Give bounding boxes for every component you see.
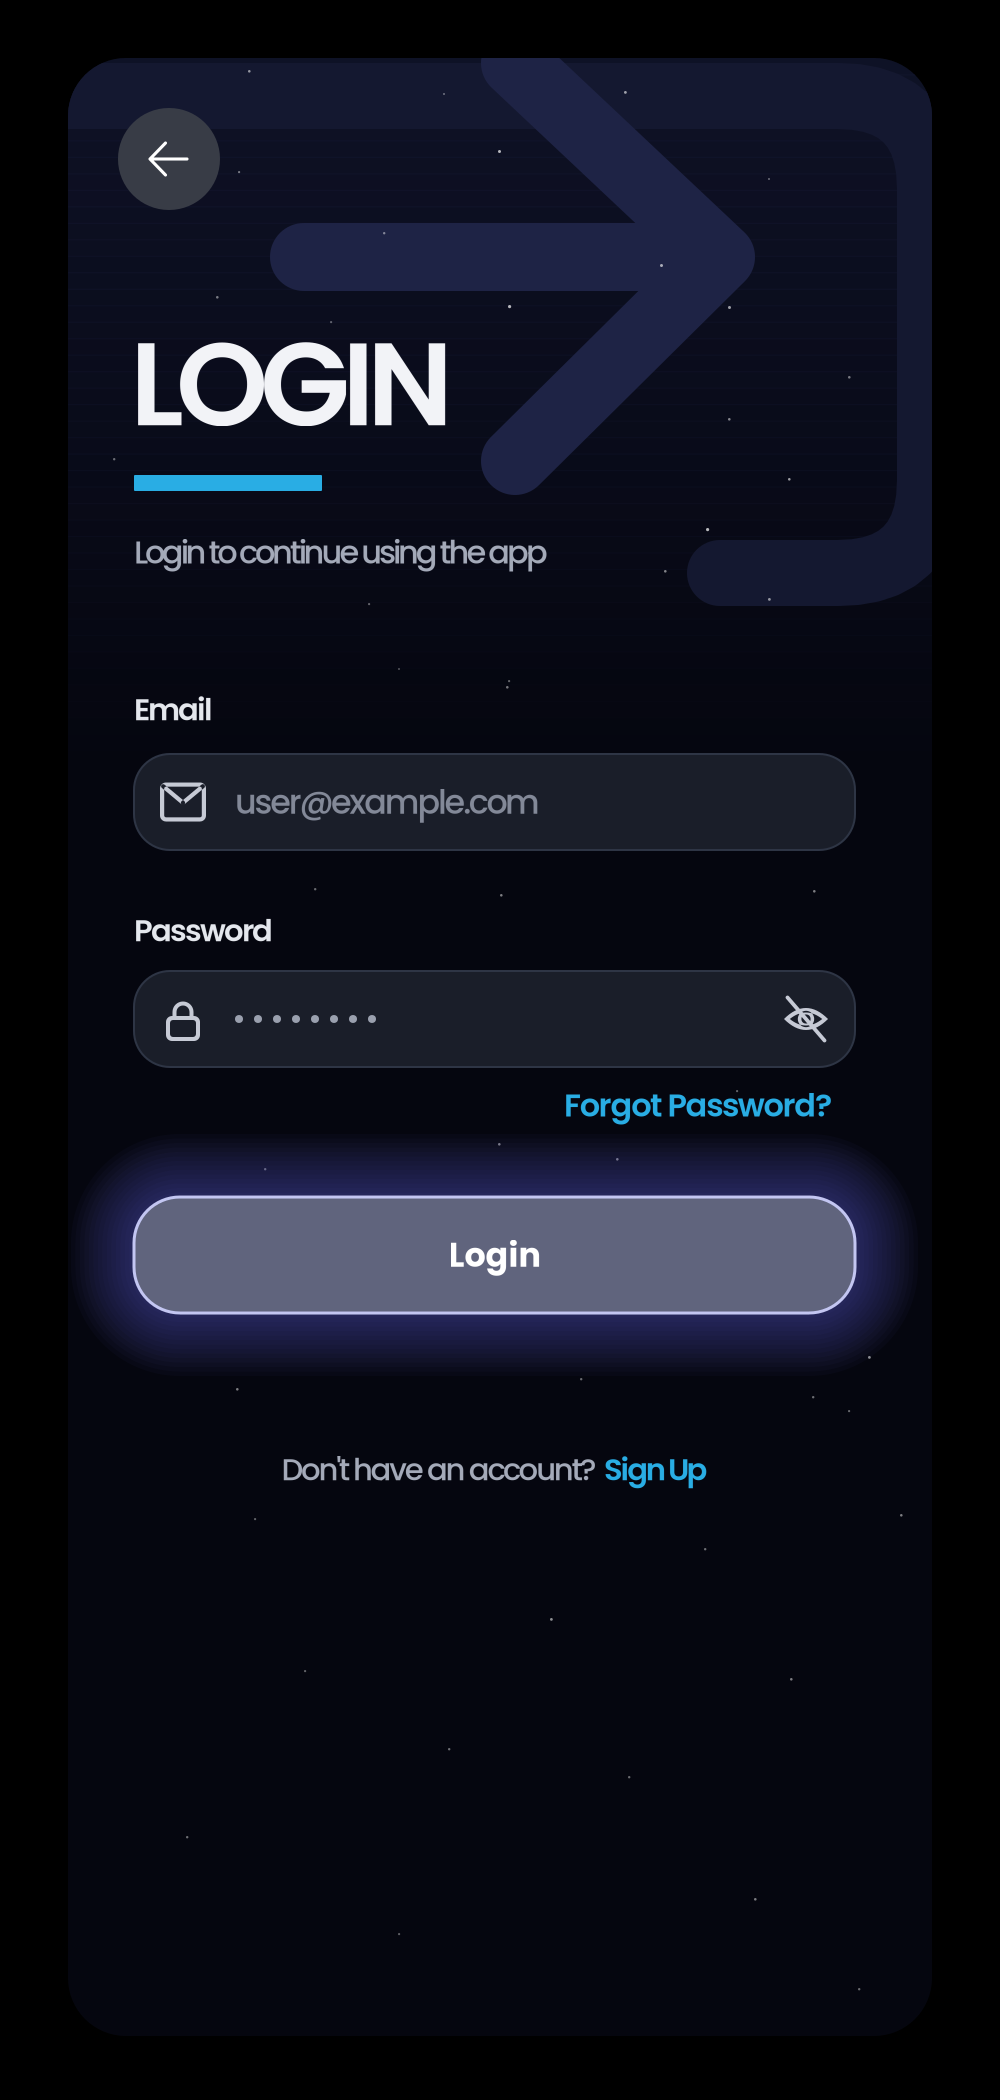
staticText: Login to continue using the app: [134, 530, 548, 575]
staticText: Email: [134, 688, 213, 731]
button[interactable]: Login: [134, 1197, 855, 1313]
staticText: Don't have an account?: [281, 1448, 596, 1491]
button[interactable]: Forgot Password?: [111, 1083, 832, 1128]
button[interactable]: Back: [118, 108, 220, 210]
staticText: user@example.com: [235, 779, 540, 825]
staticText: Forgot Password?: [564, 1083, 832, 1128]
staticText: Password: [134, 909, 273, 952]
staticText: LOGIN: [130, 302, 453, 466]
button[interactable]: Sign Up: [604, 1448, 708, 1491]
staticText: Sign Up: [604, 1448, 708, 1491]
staticText: Login: [448, 1232, 540, 1278]
button[interactable]: Show password: [782, 995, 830, 1043]
